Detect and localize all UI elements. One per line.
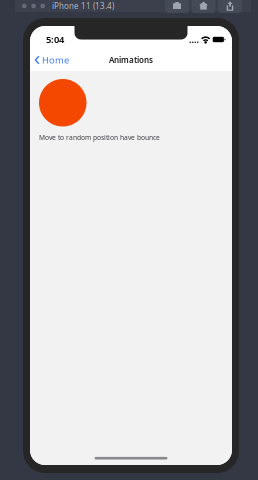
staticText: iPhone 11 (13.4) — [52, 1, 114, 11]
button[interactable]: Home — [191, 0, 215, 13]
button[interactable]: Share — [218, 0, 242, 13]
button[interactable]: Animated ball — [39, 79, 86, 126]
button[interactable]: Home — [30, 51, 75, 69]
button[interactable]: Screenshot — [165, 0, 189, 13]
staticText: Animations — [109, 55, 153, 65]
staticText: Move to random position have bounce — [39, 133, 160, 142]
staticText: Home — [42, 54, 69, 66]
staticText: 5:04 — [46, 33, 64, 46]
